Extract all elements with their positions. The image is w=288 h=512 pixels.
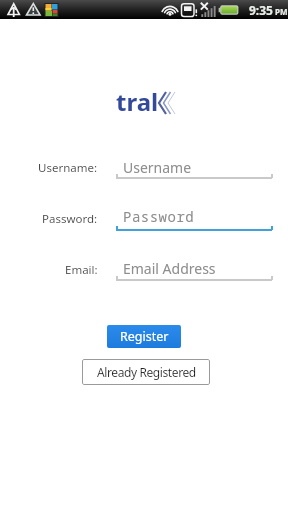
button[interactable]: Already Registered <box>82 359 210 385</box>
staticText: PM <box>275 6 288 17</box>
staticText: Already Registered <box>97 364 196 380</box>
staticText: tral <box>116 85 159 118</box>
button[interactable] <box>116 156 272 180</box>
staticText: Password <box>123 207 195 226</box>
button[interactable]: Register <box>107 325 181 348</box>
staticText: 9:35 <box>249 2 273 18</box>
button[interactable] <box>116 258 272 282</box>
staticText: Password: <box>42 211 98 227</box>
staticText: Email Address <box>123 259 216 278</box>
staticText: Username: <box>38 160 98 176</box>
staticText: Email: <box>65 262 98 278</box>
staticText: Username <box>123 158 192 177</box>
staticText: Register <box>120 328 169 345</box>
button[interactable] <box>116 208 272 232</box>
